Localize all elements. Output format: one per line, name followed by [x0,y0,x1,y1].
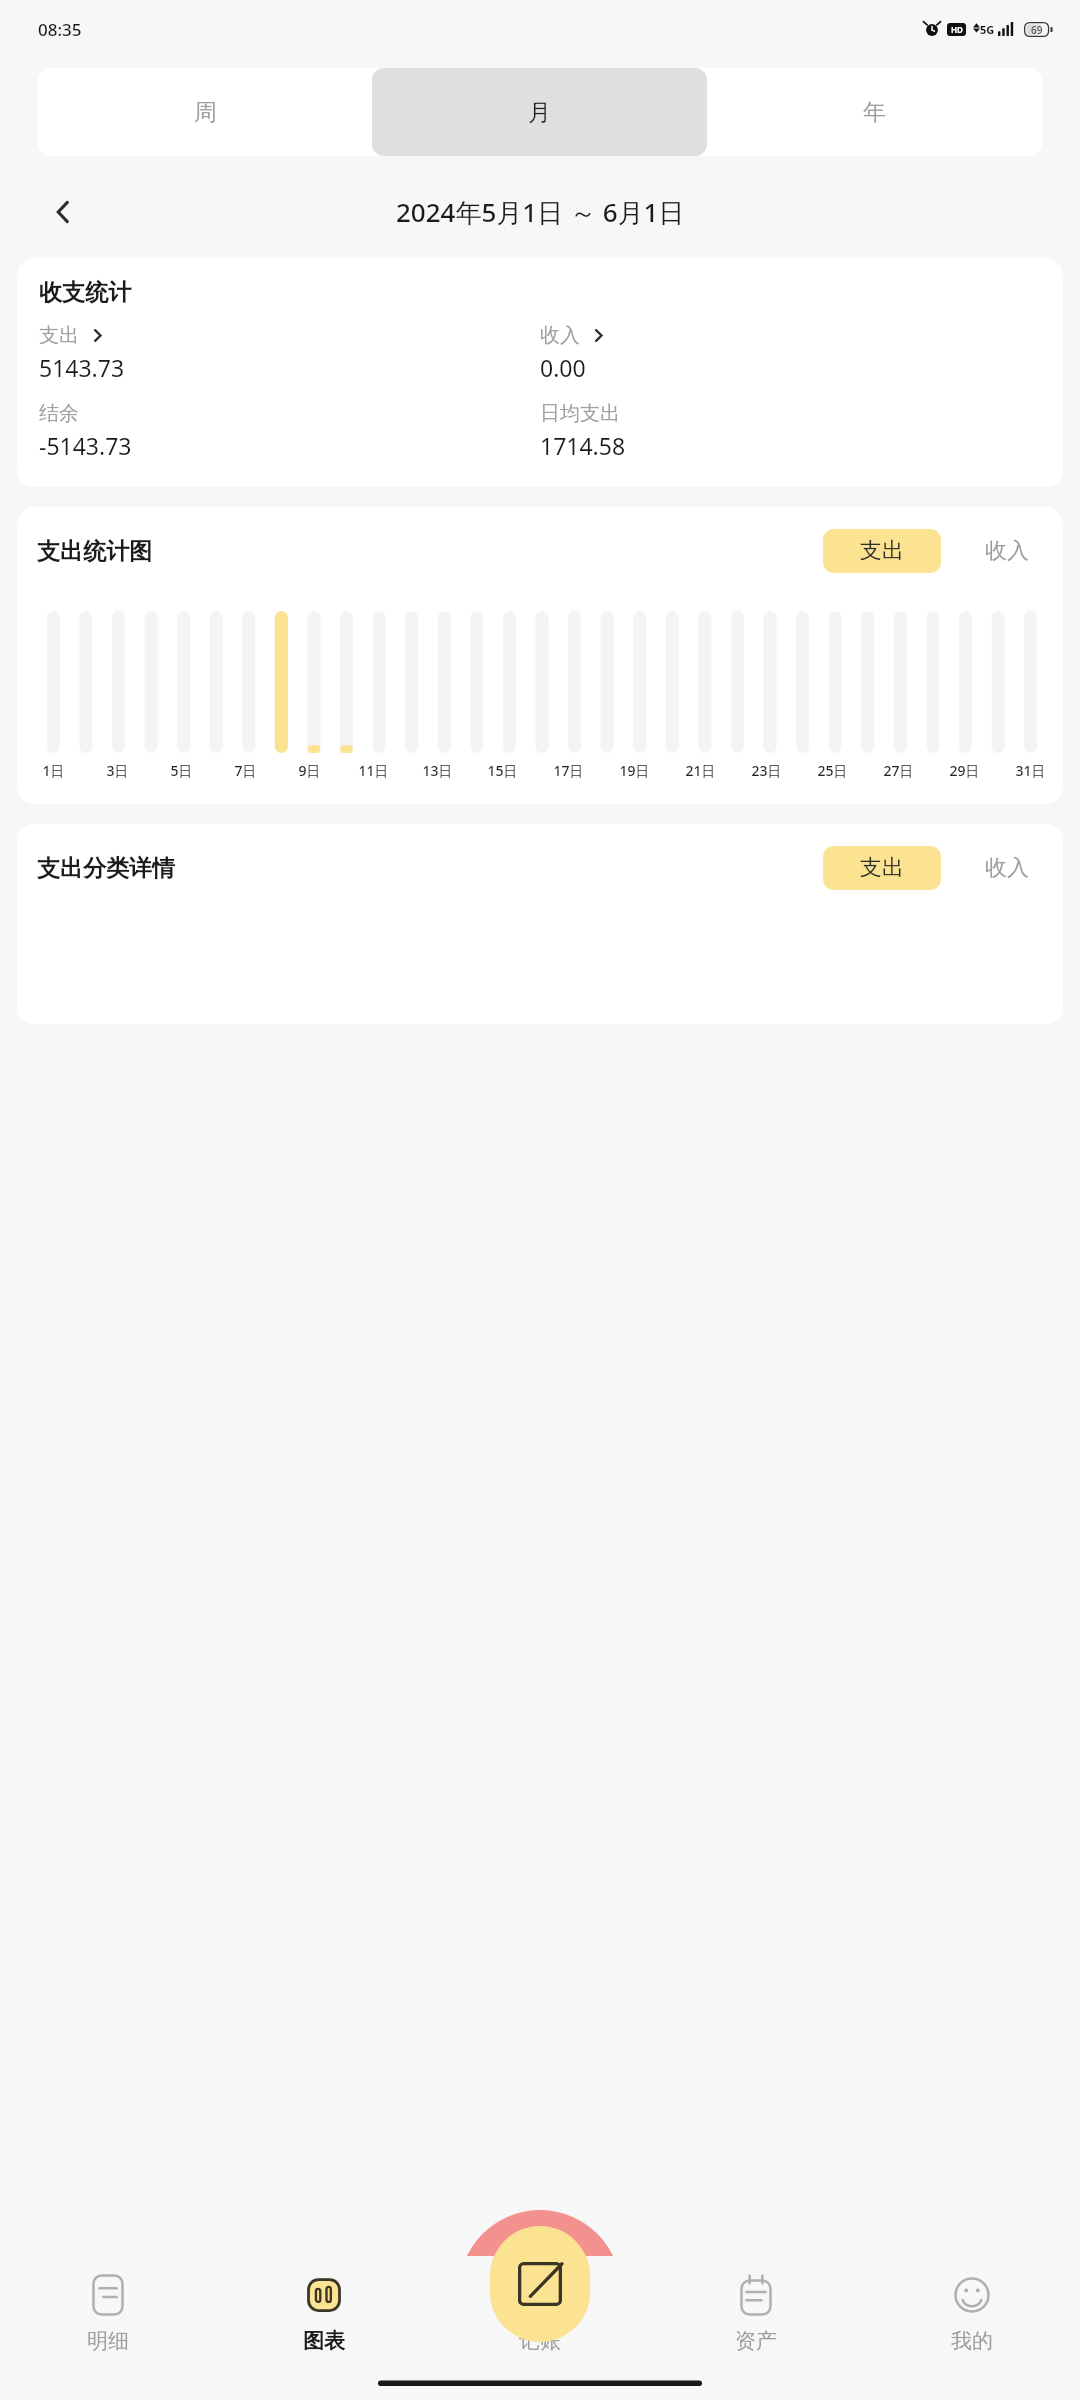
button[interactable]: 图表 [216,2256,432,2400]
staticText: 08:35 [38,18,82,41]
staticText: 7日 [234,761,257,780]
staticText: 29日 [949,761,980,780]
button[interactable]: 记账 [432,2256,648,2400]
button[interactable]: 支出 [823,529,941,573]
staticText: 5143.73 [39,352,125,383]
staticText: 11日 [358,761,389,780]
staticText: 27日 [883,761,914,780]
staticText: 收入 [985,854,1029,882]
staticText: 5日 [170,761,193,780]
staticText: 13日 [422,761,453,780]
button[interactable]: 资产 [648,2256,864,2400]
staticText: 资产 [735,2328,777,2354]
staticText: HD [951,24,963,35]
staticText: -5143.73 [39,430,132,461]
staticText: 年 [863,98,886,127]
staticText: 支出 [39,323,79,348]
staticText: 日均支出 [540,401,620,426]
button[interactable]: 明细 [0,2256,216,2400]
staticText: 19日 [619,761,650,780]
staticText: 明细 [87,2328,129,2354]
button[interactable]: Previous period [36,185,90,239]
button[interactable]: 年 [707,68,1042,156]
staticText: 支出分类详情 [37,854,175,883]
staticText: 23日 [751,761,782,780]
button[interactable]: 收入 [967,529,1047,573]
staticText: 记账 [519,2328,561,2354]
button[interactable]: 周 [38,68,372,156]
staticText: 1日 [42,761,65,780]
button[interactable]: 记账 Add record [490,2226,590,2342]
staticText: 月 [528,98,551,127]
staticText: 31日 [1015,761,1046,780]
staticText: 收入 [985,537,1029,565]
staticText: 支出 [860,854,904,882]
staticText: 周 [194,98,217,127]
button[interactable]: 收入 [967,846,1047,890]
staticText: 0.00 [540,352,586,383]
staticText: 3日 [106,761,129,780]
staticText: 结余 [39,401,79,426]
staticText: 17日 [553,761,584,780]
staticText: 支出 [860,537,904,565]
staticText: 收入 [540,323,580,348]
staticText: 我的 [951,2328,993,2354]
staticText: 1714.58 [540,430,626,461]
staticText: 9日 [298,761,321,780]
staticText: 15日 [487,761,518,780]
button[interactable]: 我的 [864,2256,1080,2400]
staticText: 收支统计 [39,278,131,307]
staticText: 21日 [685,761,716,780]
staticText: 2024年5月1日 ～ 6月1日 [396,194,685,230]
staticText: 25日 [817,761,848,780]
button[interactable]: 收入 [540,323,606,348]
button[interactable]: 月 [372,68,707,156]
button[interactable]: 支出 [823,846,941,890]
staticText: 图表 [303,2328,345,2354]
button[interactable]: 支出 [39,323,105,348]
staticText: 69 [1031,23,1043,37]
staticText: 支出统计图 [37,537,152,566]
staticText: 5G [980,22,995,37]
